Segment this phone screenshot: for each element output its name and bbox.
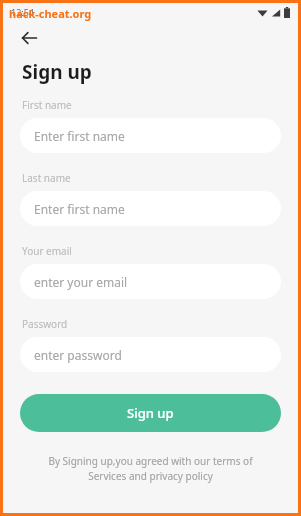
button[interactable]: Sign up [20,394,281,432]
button[interactable]: Back [13,22,45,54]
staticText: Your email [22,244,72,258]
staticText: hack-cheat.org [9,6,92,21]
button[interactable]: Enter first name [20,191,281,226]
staticText: First name [22,98,72,112]
button[interactable]: enter password [20,337,281,372]
staticText: Enter first name [34,128,125,144]
button[interactable]: enter your email [20,264,281,299]
staticText: enter your email [34,274,128,290]
staticText: Password [22,317,68,331]
staticText: Sign up [22,59,92,85]
button[interactable]: Enter first name [20,118,281,153]
staticText: 12:54 [11,6,35,18]
staticText: By Signing up,you agreed with our terms … [27,454,274,483]
staticText: Last name [22,171,71,185]
staticText: Sign up [127,404,174,422]
staticText: Enter first name [34,201,125,217]
staticText: enter password [34,347,122,363]
